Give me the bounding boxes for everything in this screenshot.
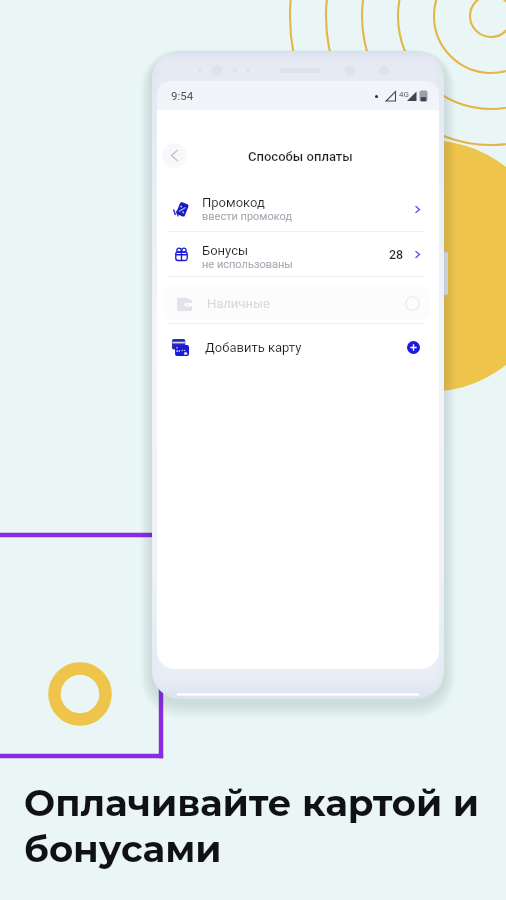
staticText: Способы оплаты bbox=[248, 149, 353, 164]
staticText: Промокод bbox=[202, 195, 265, 210]
staticText: Добавить карту bbox=[205, 340, 302, 355]
button[interactable]: Добавить карту bbox=[157, 324, 439, 370]
button[interactable]: Back bbox=[162, 143, 187, 168]
staticText: Бонусы bbox=[202, 243, 249, 258]
staticText: 4G bbox=[399, 90, 409, 99]
staticText: ввести промокод bbox=[202, 210, 293, 223]
button[interactable]: Промокод bbox=[157, 187, 439, 231]
staticText: 9:54 bbox=[171, 89, 194, 102]
button[interactable]: Наличные bbox=[164, 286, 430, 320]
staticText: Наличные bbox=[207, 296, 270, 311]
staticText: не использованы bbox=[202, 258, 293, 271]
staticText: 28 bbox=[389, 247, 404, 262]
button[interactable]: Бонусы bbox=[157, 232, 439, 276]
other: Add card bbox=[407, 341, 420, 354]
staticText: Оплачивайте картой и бонусами bbox=[24, 780, 479, 871]
